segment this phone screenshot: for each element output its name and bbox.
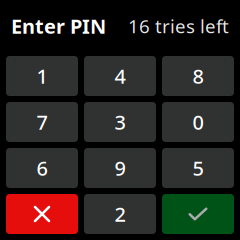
button[interactable]: 0 — [162, 102, 234, 142]
button[interactable]: 2 — [84, 194, 156, 234]
button[interactable]: Cancel — [6, 194, 78, 234]
staticText: 4 — [114, 63, 125, 89]
staticText: Enter PIN — [11, 13, 106, 39]
button[interactable]: Confirm — [162, 194, 234, 234]
staticText: 5 — [192, 155, 203, 181]
staticText: 16 tries left — [128, 14, 229, 38]
staticText: 8 — [192, 63, 203, 89]
staticText: 3 — [114, 109, 125, 135]
button[interactable]: 4 — [84, 56, 156, 96]
button[interactable]: 8 — [162, 56, 234, 96]
button[interactable]: 5 — [162, 148, 234, 188]
staticText: 0 — [192, 109, 203, 135]
button[interactable]: 3 — [84, 102, 156, 142]
staticText: 7 — [36, 109, 47, 135]
staticText: 6 — [36, 155, 47, 181]
staticText: 2 — [114, 201, 125, 227]
button[interactable]: 9 — [84, 148, 156, 188]
button[interactable]: 1 — [6, 56, 78, 96]
staticText: 1 — [36, 63, 47, 89]
button[interactable]: 7 — [6, 102, 78, 142]
staticText: 9 — [114, 155, 125, 181]
button[interactable]: 6 — [6, 148, 78, 188]
